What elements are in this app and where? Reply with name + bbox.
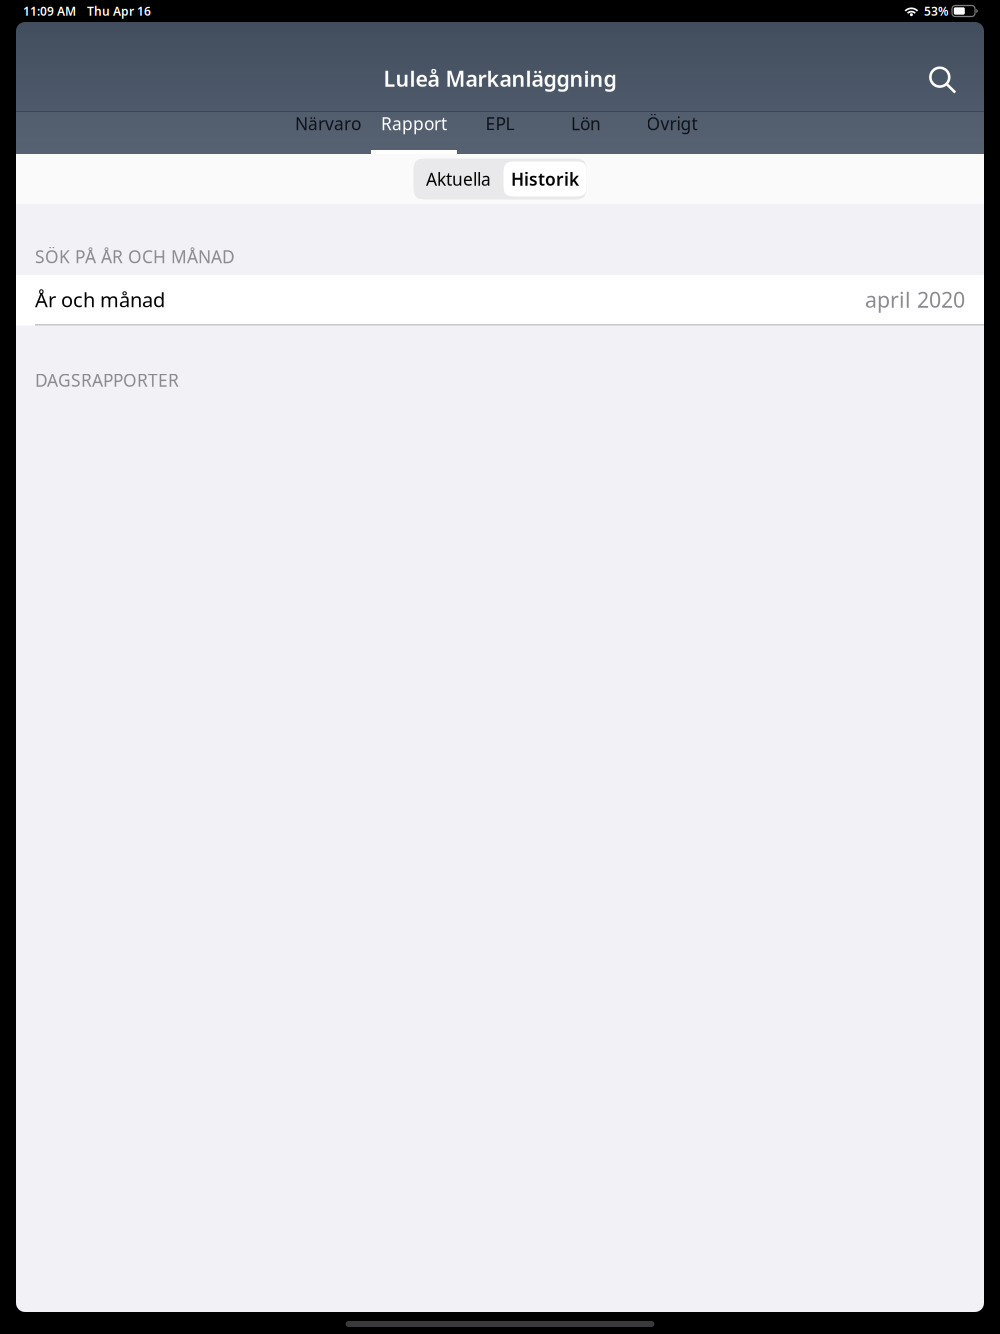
staticText: År och månad (35, 286, 165, 313)
staticText: EPL (485, 112, 514, 135)
button[interactable]: Lön (543, 112, 629, 154)
staticText: Luleå Markanläggning (383, 64, 616, 93)
staticText: Aktuella (426, 167, 491, 190)
button[interactable]: Historik (503, 158, 586, 199)
staticText: Övrigt (646, 112, 697, 135)
staticText: Historik (511, 167, 579, 190)
button[interactable]: Övrigt (629, 112, 715, 154)
staticText: 11:09 AM (23, 3, 76, 19)
staticText: Thu Apr 16 (87, 3, 151, 19)
staticText: SÖK PÅ ÅR OCH MÅNAD (35, 245, 235, 268)
staticText: Rapport (381, 112, 447, 135)
button[interactable]: År och månad (16, 275, 984, 324)
staticText: 53% (924, 3, 949, 19)
button[interactable]: Rapport (371, 112, 457, 154)
button[interactable]: Search (915, 53, 971, 109)
button[interactable]: EPL (457, 112, 543, 154)
button[interactable]: Närvaro (285, 112, 371, 154)
staticText: Lön (571, 112, 601, 135)
button[interactable]: Aktuella (413, 158, 503, 199)
staticText: Närvaro (295, 112, 361, 135)
staticText: april 2020 (865, 285, 965, 314)
staticText: DAGSRAPPORTER (35, 368, 179, 391)
